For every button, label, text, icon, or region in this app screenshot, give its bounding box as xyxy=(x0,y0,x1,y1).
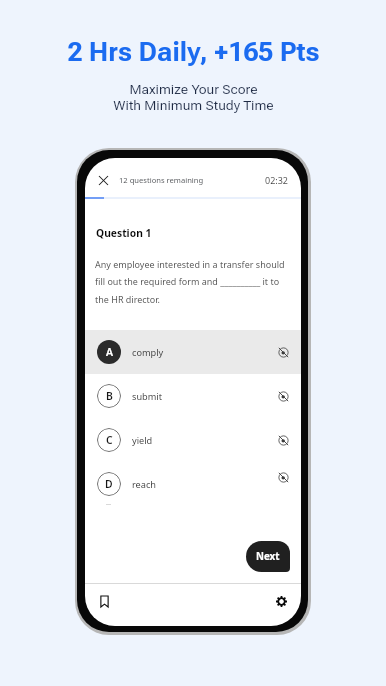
staticText: 02:32 xyxy=(265,174,289,186)
staticText: B xyxy=(106,389,113,403)
staticText: 12 questions remaining xyxy=(119,175,204,185)
staticText: A xyxy=(106,345,113,359)
staticText: reach xyxy=(132,478,157,491)
button[interactable]: Next xyxy=(246,541,290,572)
button[interactable]: D xyxy=(85,462,301,506)
button[interactable]: B xyxy=(85,374,301,418)
button[interactable]: Hide option xyxy=(275,388,291,404)
staticText: C xyxy=(106,433,113,447)
button[interactable]: Settings xyxy=(272,592,290,610)
button[interactable]: A xyxy=(85,330,301,374)
button[interactable]: Hide option xyxy=(275,469,291,485)
staticText: Any employee interested in a transfer sh… xyxy=(95,258,288,306)
button[interactable]: C xyxy=(85,418,301,462)
staticText: submit xyxy=(132,390,163,403)
staticText: Maximize Your Score xyxy=(129,81,258,97)
staticText: comply xyxy=(132,346,164,359)
staticText: D xyxy=(105,477,113,491)
staticText: Question 1 xyxy=(96,226,152,240)
staticText: Next xyxy=(256,550,280,563)
button[interactable]: Hide option xyxy=(275,432,291,448)
staticText: With Minimum Study Time xyxy=(113,97,274,113)
button[interactable]: Close xyxy=(95,172,111,188)
button[interactable]: Hide option xyxy=(275,344,291,360)
button[interactable]: Bookmark xyxy=(95,592,113,610)
staticText: yield xyxy=(132,434,153,447)
staticText: 2 Hrs Daily, +165 Pts xyxy=(67,36,320,67)
